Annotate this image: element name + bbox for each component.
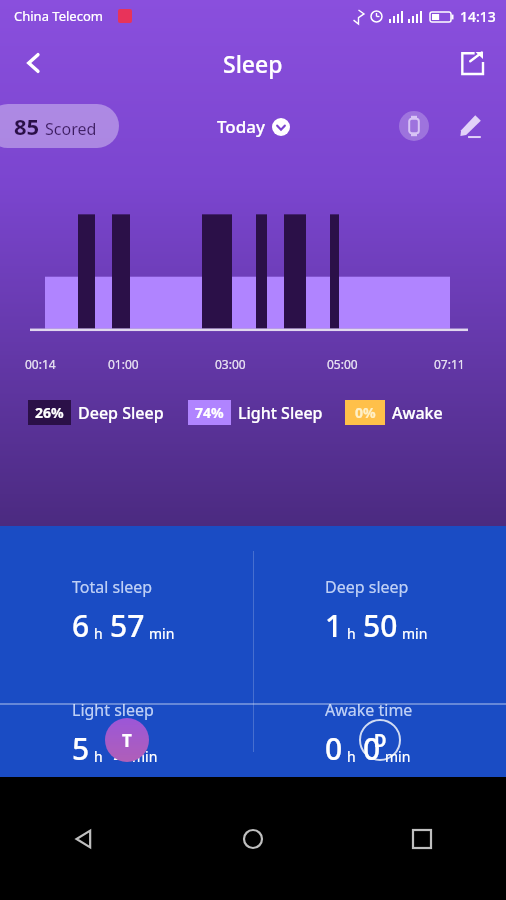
button[interactable]: 85 [0,104,119,148]
button[interactable]: Back [63,818,105,860]
button[interactable]: Time view [105,718,149,762]
staticText: min [132,747,158,766]
staticText: Light sleep [72,699,154,721]
staticText: Scored [45,118,97,140]
staticText: 07:11 [434,356,465,372]
staticText: 0 [325,728,343,769]
staticText: Awake time [325,699,413,721]
staticText: Today [217,115,265,138]
staticText: 00:14 [25,356,56,372]
button[interactable]: Watch [392,104,436,148]
button[interactable]: Home [232,818,274,860]
staticText: h [347,624,356,643]
staticText: 26% [35,403,64,422]
staticText: Awake [392,402,443,424]
staticText: h [94,624,103,643]
staticText: Deep sleep [325,576,409,598]
staticText: 01:00 [108,356,139,372]
staticText: 0% [355,403,376,422]
staticText: 05:00 [327,356,358,372]
staticText: min [149,624,175,643]
staticText: 1 [325,605,343,646]
staticText: Light Sleep [238,402,323,424]
staticText: h [94,747,103,766]
staticText: 7 [110,728,128,769]
staticText: 74% [195,403,224,422]
staticText: T [122,729,132,752]
staticText: Sleep [223,48,283,79]
staticText: D [374,729,387,752]
button[interactable]: Today [217,115,290,138]
staticText: Total sleep [72,576,153,598]
button[interactable]: Back [8,37,60,89]
staticText: 85 [14,111,40,141]
staticText: 50 [363,605,398,646]
staticText: 03:00 [215,356,246,372]
button[interactable]: Data view [358,718,402,762]
staticText: China Telecom [14,7,103,25]
button[interactable]: Share [448,39,496,87]
button[interactable]: Edit [448,104,492,148]
staticText: h [347,747,356,766]
staticText: min [402,624,428,643]
staticText: 6 [72,605,90,646]
staticText: 0 [363,728,381,769]
staticText: Deep Sleep [78,402,164,424]
staticText: 57 [110,605,145,646]
staticText: min [385,747,411,766]
staticText: 5 [72,728,90,769]
button[interactable]: Recents [401,818,443,860]
staticText: 14:13 [460,7,496,26]
